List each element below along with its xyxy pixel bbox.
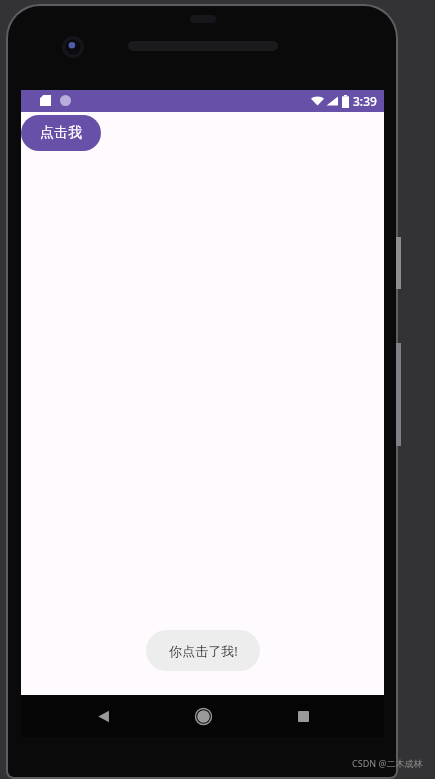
staticText: CSDN @二木成林 [352,757,423,769]
button[interactable]: Recent apps [288,701,318,731]
staticText: 3:39 [353,93,377,109]
staticText: 点击我 [40,124,82,142]
button[interactable]: 点击我 [21,115,101,151]
staticText: 你点击了我! [169,642,238,660]
button[interactable]: Home [188,701,218,731]
button[interactable]: Back [88,701,118,731]
